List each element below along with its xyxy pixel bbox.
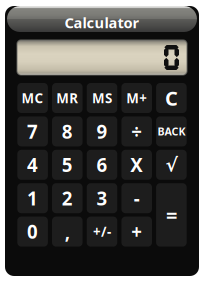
button[interactable]: 8 — [52, 116, 83, 146]
button[interactable]: MC — [17, 83, 48, 113]
staticText: C — [165, 85, 178, 111]
staticText: - — [134, 186, 140, 211]
button[interactable]: 5 — [52, 150, 83, 180]
staticText: +/- — [93, 223, 111, 240]
button[interactable]: + — [121, 217, 152, 247]
button[interactable]: +/- — [87, 217, 117, 247]
staticText: 4 — [27, 152, 38, 177]
staticText: M+ — [126, 89, 147, 107]
button[interactable]: 4 — [17, 150, 48, 180]
button[interactable]: MR — [52, 83, 83, 113]
button[interactable]: C — [156, 83, 187, 113]
staticText: 0 — [27, 219, 38, 244]
button[interactable]: = — [156, 183, 187, 247]
button[interactable]: BACK — [156, 116, 187, 146]
staticText: MR — [56, 89, 78, 107]
staticText: MS — [92, 89, 112, 107]
staticText: ÷ — [131, 119, 142, 144]
staticText: 2 — [62, 186, 73, 211]
button[interactable]: 9 — [87, 116, 117, 146]
button[interactable]: - — [121, 183, 152, 213]
button[interactable]: MS — [87, 83, 117, 113]
staticText: √ — [165, 154, 177, 175]
button[interactable]: 3 — [87, 183, 117, 213]
staticText: 5 — [62, 152, 73, 177]
button[interactable]: 2 — [52, 183, 83, 213]
staticText: 1 — [27, 186, 38, 211]
button[interactable]: 6 — [87, 150, 117, 180]
button[interactable]: 0 — [17, 217, 48, 247]
button[interactable]: X — [121, 150, 152, 180]
staticText: 3 — [96, 186, 107, 211]
button[interactable]: √ — [156, 150, 187, 180]
staticText: 9 — [96, 119, 107, 144]
staticText: 6 — [96, 152, 107, 177]
staticText: = — [166, 202, 177, 228]
staticText: 8 — [62, 119, 73, 144]
staticText: BACK — [157, 124, 185, 138]
staticText: X — [130, 152, 143, 177]
button[interactable]: ÷ — [121, 116, 152, 146]
button[interactable]: 7 — [17, 116, 48, 146]
button[interactable]: M+ — [121, 83, 152, 113]
staticText: MC — [22, 89, 44, 107]
staticText: 7 — [27, 119, 38, 144]
staticText: , — [65, 219, 70, 244]
button[interactable]: , — [52, 217, 83, 247]
button[interactable]: 1 — [17, 183, 48, 213]
staticText: + — [131, 219, 142, 244]
staticText: Calculator — [64, 13, 139, 32]
